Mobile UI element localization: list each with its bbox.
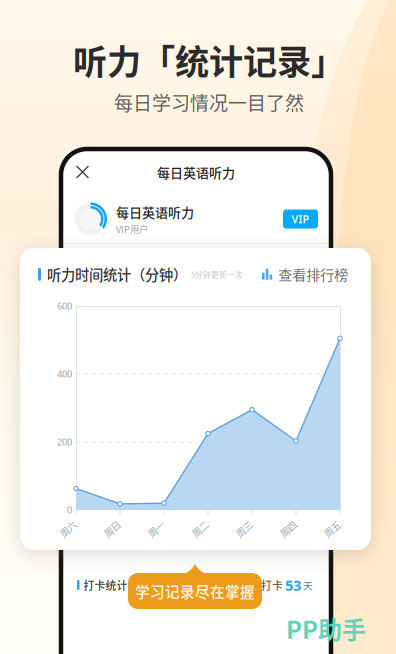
staticText: 周四 (279, 522, 297, 536)
staticText: VIP (291, 212, 309, 226)
staticText: 每日学习情况一目了然 (114, 88, 304, 116)
staticText: 听力时间统计（分钟） (41, 264, 187, 285)
staticText: 周五 (323, 522, 341, 536)
staticText: 听力「统计记录」 (73, 35, 345, 84)
staticText: 200 (57, 436, 72, 448)
staticText: 学习记录尽在掌握 (135, 580, 255, 602)
staticText: 0 (67, 504, 72, 516)
staticText: 周日 (103, 522, 121, 536)
staticText: PP助手 (286, 611, 366, 646)
staticText: 周六 (59, 522, 77, 536)
staticText: 每日英语听力 (116, 202, 194, 221)
staticText: 400 (57, 368, 72, 380)
button[interactable]: VIP (283, 209, 318, 228)
button[interactable]: 关闭 (72, 161, 93, 182)
staticText: 周三 (235, 522, 253, 536)
staticText: 打卡 (261, 577, 285, 593)
staticText: 打卡统计 (79, 577, 127, 593)
staticText: 每日英语听力 (157, 162, 235, 181)
staticText: 5分钟更新一次 (187, 269, 243, 280)
staticText: VIP用户 (116, 222, 148, 236)
staticText: 周二 (191, 522, 209, 536)
staticText: 查看排行榜 (278, 264, 348, 284)
staticText: 周一 (147, 522, 165, 536)
staticText: 53 (285, 575, 301, 595)
staticText: 天 (301, 578, 313, 592)
button[interactable]: 查看排行榜 (262, 264, 348, 284)
staticText: 600 (57, 300, 72, 312)
